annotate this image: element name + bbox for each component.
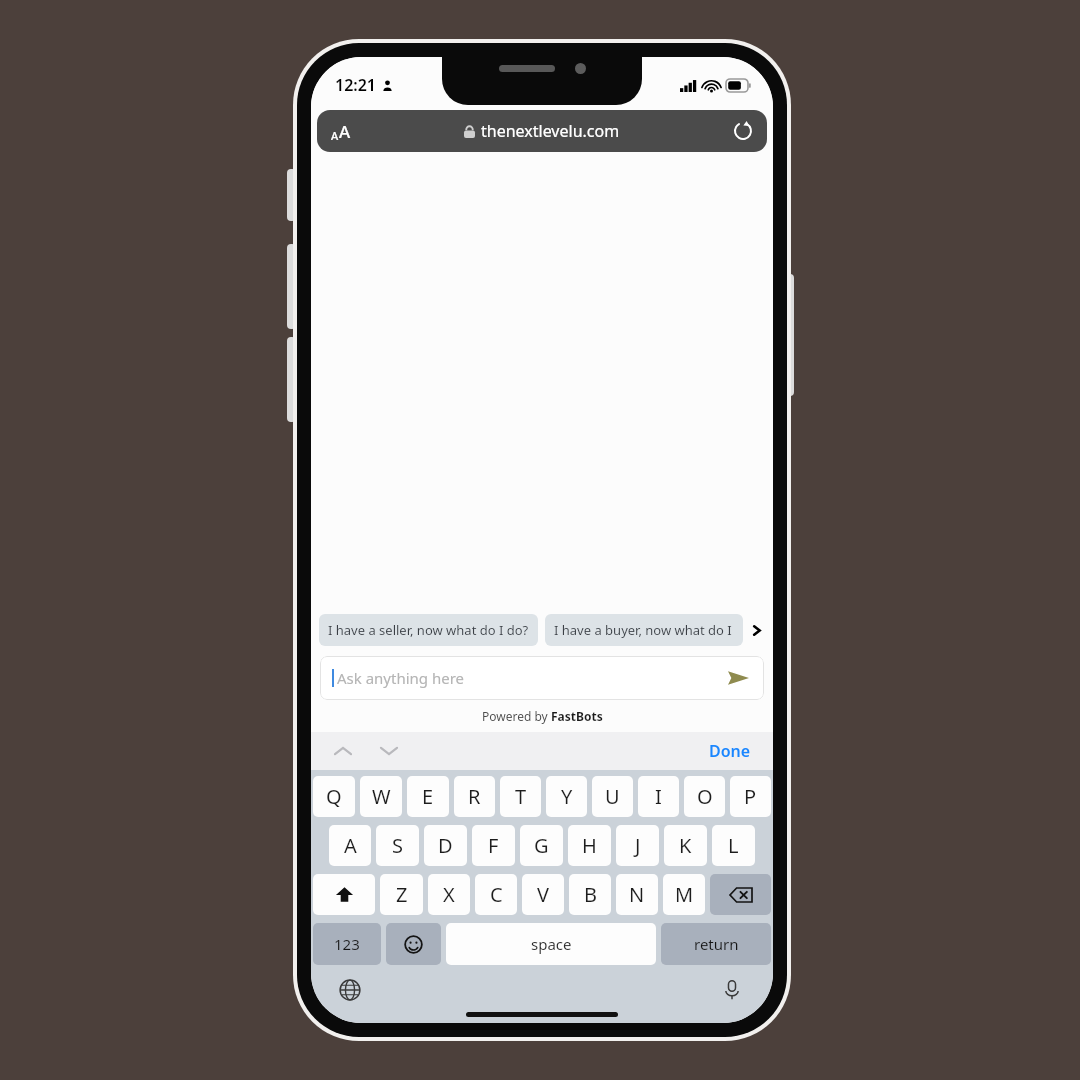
button[interactable]: Previous field xyxy=(327,735,359,767)
button[interactable]: I have a buyer, now what do I do? xyxy=(545,614,743,646)
button[interactable]: Next field xyxy=(373,735,405,767)
button[interactable]: space xyxy=(446,923,656,965)
staticText: thenextlevelu.com xyxy=(481,120,620,142)
staticText: H xyxy=(582,832,597,859)
staticText: W xyxy=(372,783,391,810)
staticText: A xyxy=(344,832,357,859)
button[interactable]: A xyxy=(329,825,371,866)
staticText: A xyxy=(331,128,339,143)
button[interactable]: O xyxy=(684,776,725,817)
staticText: Done xyxy=(709,740,751,762)
button[interactable]: C xyxy=(475,874,517,915)
staticText: B xyxy=(584,881,597,908)
staticText: 123 xyxy=(334,934,360,954)
staticText: S xyxy=(392,832,403,859)
staticText: Y xyxy=(561,783,573,810)
button[interactable]: Q xyxy=(313,776,355,817)
staticText: M xyxy=(675,881,694,908)
button[interactable]: I have a seller, now what do I do? xyxy=(319,614,538,646)
button[interactable]: K xyxy=(664,825,707,866)
button[interactable]: Y xyxy=(546,776,587,817)
button[interactable]: U xyxy=(592,776,633,817)
button[interactable]: Reload xyxy=(733,121,753,141)
button[interactable]: E xyxy=(407,776,449,817)
staticText: O xyxy=(697,783,713,810)
staticText: J xyxy=(635,832,641,859)
button[interactable]: return xyxy=(661,923,771,965)
staticText: G xyxy=(534,832,549,859)
staticText: R xyxy=(468,783,481,810)
staticText: E xyxy=(422,783,434,810)
button[interactable]: M xyxy=(663,874,705,915)
staticText: Z xyxy=(396,881,408,908)
button[interactable]: Done xyxy=(703,736,757,766)
staticText: FastBots xyxy=(551,708,603,724)
staticText: A xyxy=(339,120,351,143)
button[interactable]: Ask anything here xyxy=(320,656,764,700)
button[interactable]: J xyxy=(616,825,659,866)
staticText: Powered by xyxy=(482,708,551,724)
button[interactable]: Shift xyxy=(313,874,375,915)
button[interactable]: G xyxy=(520,825,563,866)
button[interactable]: F xyxy=(472,825,515,866)
button[interactable]: P xyxy=(730,776,771,817)
staticText: space xyxy=(531,934,572,954)
staticText: return xyxy=(694,934,739,954)
staticText: U xyxy=(605,783,620,810)
button[interactable]: Dictate xyxy=(715,973,749,1007)
staticText: L xyxy=(728,832,739,859)
staticText: F xyxy=(488,832,499,859)
button[interactable]: 123 xyxy=(313,923,381,965)
button[interactable]: More suggestions xyxy=(743,613,769,647)
staticText: P xyxy=(744,783,757,810)
button[interactable]: W xyxy=(360,776,402,817)
button[interactable]: Emoji xyxy=(386,923,441,965)
staticText: I xyxy=(655,783,662,810)
staticText: V xyxy=(537,881,549,908)
staticText: K xyxy=(679,832,692,859)
button[interactable]: B xyxy=(569,874,611,915)
button[interactable]: S xyxy=(376,825,419,866)
button[interactable]: Send xyxy=(724,664,752,692)
button[interactable]: R xyxy=(454,776,495,817)
staticText: D xyxy=(438,832,453,859)
staticText: Ask anything here xyxy=(337,668,465,688)
staticText: C xyxy=(490,881,503,908)
button[interactable]: Backspace xyxy=(710,874,771,915)
button[interactable]: X xyxy=(428,874,470,915)
button[interactable]: A xyxy=(317,110,767,152)
staticText: X xyxy=(443,881,455,908)
staticText: T xyxy=(515,783,527,810)
button[interactable]: L xyxy=(712,825,755,866)
staticText: I have a buyer, now what do I do? xyxy=(554,621,734,639)
button[interactable]: T xyxy=(500,776,541,817)
staticText: I have a seller, now what do I do? xyxy=(328,621,529,639)
button[interactable]: N xyxy=(616,874,658,915)
staticText: N xyxy=(629,881,645,908)
staticText: Q xyxy=(326,783,342,810)
button[interactable]: V xyxy=(522,874,564,915)
button[interactable]: I xyxy=(638,776,679,817)
button[interactable]: D xyxy=(424,825,467,866)
staticText: 12:21 xyxy=(335,74,377,96)
button[interactable]: H xyxy=(568,825,611,866)
button[interactable]: Z xyxy=(380,874,423,915)
button[interactable]: Change keyboard xyxy=(333,973,367,1007)
